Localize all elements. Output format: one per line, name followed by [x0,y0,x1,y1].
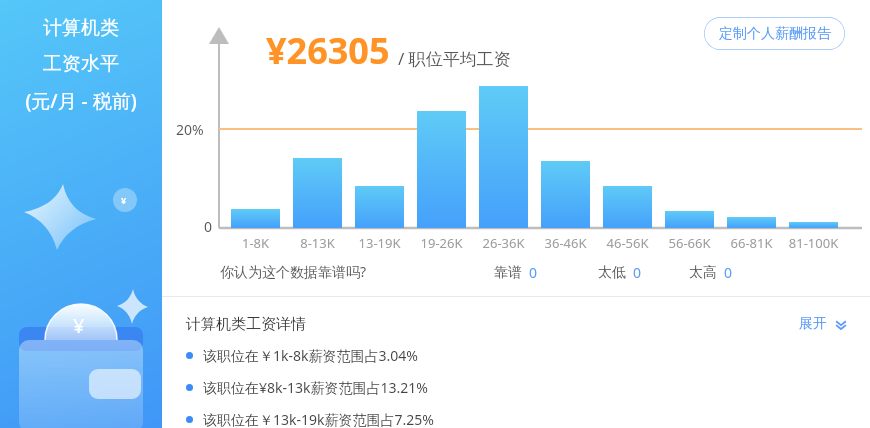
staticText: 该职位在¥8k-13k薪资范围占13.21% [203,378,428,397]
staticText: 定制个人薪酬报告 [719,25,831,43]
staticText: ¥26305 [266,26,390,75]
staticText: 46-56K [592,234,663,252]
button[interactable]: 靠谱 [492,262,540,283]
staticText: 36-46K [530,234,601,252]
staticText: 工资水平 [43,52,119,76]
staticText: 13-19K [344,234,415,252]
staticText: 展开 [799,315,827,333]
staticText: 该职位在￥13k-19k薪资范围占7.25% [203,410,434,428]
button[interactable]: 定制个人薪酬报告 [704,17,845,50]
staticText: 计算机类工资详情 [186,315,306,334]
staticText: 太低 [598,264,626,282]
staticText: (元/月 - 税前) [25,88,137,114]
staticText: 你认为这个数据靠谱吗? [220,262,367,281]
staticText: 20% [176,120,204,139]
staticText: 56-66K [654,234,725,252]
staticText: 计算机类 [43,16,119,40]
button[interactable]: 太高 [687,262,735,283]
staticText: ¥ [73,312,85,339]
button[interactable]: 展开 [795,311,852,337]
staticText: / 职位平均工资 [398,47,511,70]
staticText: 19-26K [406,234,477,252]
staticText: 1-8K [220,234,291,252]
staticText: 26-36K [468,234,539,252]
staticText: 0 [529,263,538,282]
button[interactable]: 太低 [596,262,644,283]
staticText: 靠谱 [494,264,522,282]
staticText: 0 [724,263,733,282]
staticText: 太高 [689,264,717,282]
staticText: 81-100K [778,234,849,252]
staticText: 66-81K [716,234,787,252]
staticText: 该职位在￥1k-8k薪资范围占3.04% [203,346,418,365]
staticText: ¥ [121,194,127,206]
staticText: 0 [633,263,642,282]
staticText: 0 [204,217,213,236]
staticText: 8-13K [282,234,353,252]
